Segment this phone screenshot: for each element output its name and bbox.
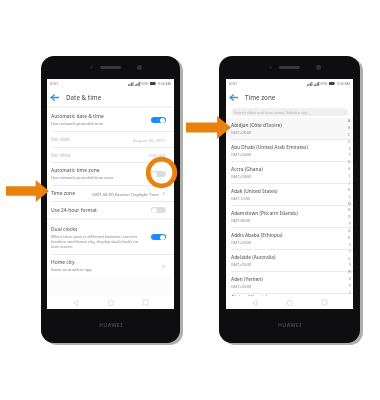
button[interactable]: Home [283, 296, 296, 309]
staticText: T [349, 250, 351, 254]
staticText: AT&T [50, 81, 59, 86]
staticText: W [348, 270, 351, 274]
staticText: O [348, 215, 351, 219]
staticText: GMT-04:00 Eastern Daylight Time [92, 191, 159, 197]
button[interactable]: Abu Dhabi (United Arab Emirates) [226, 140, 353, 161]
staticText: Set date [51, 136, 71, 143]
button[interactable]: Toggle [151, 207, 166, 213]
button[interactable]: Step arrow [6, 180, 49, 202]
staticText: N [348, 208, 351, 212]
staticText: Dual clocks [51, 226, 78, 233]
staticText: Use network-provided time [51, 121, 104, 127]
button[interactable]: Dual clocks [47, 220, 174, 254]
staticText: Time zone [51, 190, 75, 197]
staticText: Search cities and time zones. Select a c… [234, 110, 308, 115]
staticText: 100% [319, 81, 328, 86]
button[interactable]: Set date [47, 132, 174, 147]
staticText: Abidjan (Côte d'Ivoire) [231, 122, 282, 129]
staticText: Z [349, 291, 351, 295]
staticText: Same as another app [51, 267, 92, 273]
staticText: Automatic date & time [51, 113, 104, 120]
staticText: 9:36 AM [337, 81, 350, 86]
staticText: J [349, 181, 350, 185]
staticText: B [348, 126, 351, 130]
button[interactable]: Automatic date & time [47, 108, 174, 131]
button[interactable]: Back [48, 91, 60, 103]
staticText: E [349, 147, 351, 151]
staticText: Q [348, 229, 351, 233]
staticText: G [348, 160, 351, 164]
staticText: Time zone [245, 93, 276, 101]
staticText: F [349, 153, 351, 157]
staticText: GMT+00:00 [231, 174, 252, 179]
staticText: 9:36 AM [149, 152, 166, 158]
staticText: D [348, 140, 351, 144]
staticText: Use network-provided time zone [51, 175, 114, 181]
staticText: When time zone is different between curr… [51, 234, 147, 249]
button[interactable]: Toggle [151, 234, 166, 240]
staticText: AT&T [229, 81, 238, 86]
button[interactable]: Algiers (Algeria) [226, 294, 353, 296]
staticText: GMT+00:00 [231, 130, 252, 135]
button[interactable]: Adak (United States) [226, 184, 353, 205]
button[interactable]: Abidjan (Côte d'Ivoire) [226, 118, 353, 139]
staticText: 9:36 AM [158, 81, 171, 86]
staticText: K [348, 188, 351, 192]
staticText: V [349, 263, 351, 267]
button[interactable]: Adamstown (Pitcairn Islands) [226, 206, 353, 227]
button[interactable]: Toggle [151, 117, 166, 123]
button[interactable]: Addis Ababa (Ethiopia) [226, 228, 353, 249]
staticText: GMT+09:30 [231, 262, 252, 267]
staticText: S [349, 243, 351, 247]
staticText: Adelaide (Australia) [231, 254, 276, 261]
button[interactable]: Set time [47, 148, 174, 162]
staticText: Y [349, 284, 351, 288]
button[interactable]: Toggle [151, 171, 166, 177]
button[interactable]: Search cities and time zones. Select a c… [231, 108, 348, 116]
staticText: H [348, 167, 351, 171]
button[interactable]: Recents [318, 296, 331, 309]
button[interactable]: Step arrow [186, 116, 231, 139]
staticText: Addis Ababa (Ethiopia) [231, 232, 283, 239]
staticText: Adak (United States) [231, 188, 278, 195]
staticText: R [348, 236, 351, 240]
staticText: Abu Dhabi (United Arab Emirates) [231, 144, 308, 151]
button[interactable]: Recents [139, 296, 152, 309]
staticText: U [348, 257, 351, 261]
button[interactable]: Home [104, 296, 117, 309]
staticText: Date & time [66, 93, 102, 101]
button[interactable]: Back [69, 296, 82, 309]
button[interactable]: Time zone [47, 186, 174, 201]
staticText: HUAWEI [278, 321, 302, 328]
staticText: GMT+03:00 [231, 240, 252, 245]
staticText: P [349, 222, 351, 226]
staticText: GMT-10:00 [231, 196, 251, 201]
staticText: Use 24-hour format [51, 207, 97, 214]
button[interactable]: Home city [47, 255, 174, 277]
staticText: HUAWEI [99, 321, 123, 328]
staticText: GMT+03:00 [231, 284, 252, 289]
staticText: Adamstown (Pitcairn Islands) [231, 210, 298, 217]
button[interactable]: Accra (Ghana) [226, 162, 353, 183]
staticText: Aden (Yemen) [231, 276, 263, 283]
staticText: Home city [51, 259, 75, 266]
button[interactable]: Aden (Yemen) [226, 272, 353, 293]
staticText: L [349, 195, 351, 199]
staticText: C [348, 133, 351, 137]
staticText: Automatic time zone [51, 167, 100, 174]
staticText: M [348, 202, 351, 206]
button[interactable]: Back [248, 296, 261, 309]
button[interactable]: Adelaide (Australia) [226, 250, 353, 271]
staticText: GMT+04:00 [231, 152, 252, 157]
staticText: X [349, 277, 351, 281]
staticText: 100% [140, 81, 149, 86]
button[interactable]: Use 24-hour format [47, 202, 174, 218]
button[interactable]: Automatic time zone [47, 163, 174, 185]
button[interactable]: Back [227, 91, 239, 103]
staticText: Accra (Ghana) [231, 166, 263, 173]
staticText: August 30, 2017 [133, 137, 166, 143]
staticText: Set time [51, 152, 71, 159]
staticText: I [349, 174, 351, 178]
staticText: Algiers (Algeria) [231, 294, 268, 296]
staticText: A [348, 119, 351, 123]
